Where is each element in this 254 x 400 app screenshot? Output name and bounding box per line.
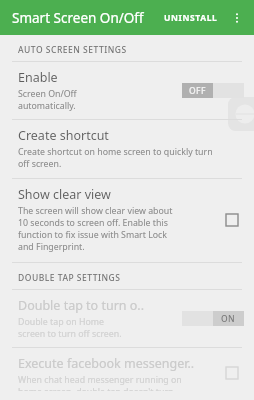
- staticText: DOUBLE TAP SETTINGS: [18, 272, 121, 284]
- staticText: OFF: [189, 85, 206, 97]
- staticText: Enable: [18, 69, 58, 86]
- staticText: Create shortcut on home screen to quickl…: [18, 146, 213, 170]
- button[interactable]: Toggle on: [182, 311, 244, 326]
- staticText: Create shortcut: [18, 127, 109, 144]
- staticText: Show clear view: [18, 186, 111, 203]
- button[interactable]: Checkbox: [220, 208, 244, 232]
- staticText: AUTO SCREEN SETTINGS: [18, 44, 127, 56]
- staticText: Double tap on Home screen to turn off sc…: [18, 316, 122, 340]
- staticText: Execute facebook messenger..: [18, 355, 195, 372]
- staticText: ON: [221, 313, 236, 325]
- button[interactable]: Execute facebook messenger..: [0, 348, 254, 400]
- button[interactable]: Create shortcut: [0, 120, 254, 178]
- staticText: Double tap to turn o..: [18, 297, 145, 314]
- button[interactable]: Double tap to turn o..: [0, 290, 254, 347]
- button[interactable]: Show clear view: [0, 179, 254, 262]
- button[interactable]: UNINSTALL: [158, 4, 224, 32]
- button[interactable]: Enable: [0, 62, 254, 119]
- staticText: The screen will show clear view about 10…: [18, 205, 173, 253]
- staticText: UNINSTALL: [164, 12, 218, 24]
- button[interactable]: Toggle off: [182, 83, 244, 98]
- staticText: Screen On/Off automatically.: [18, 88, 77, 112]
- staticText: Smart Screen On/Off: [12, 9, 144, 27]
- button[interactable]: Checkbox: [220, 361, 244, 385]
- staticText: When chat head messenger running on home…: [18, 374, 182, 391]
- button[interactable]: More options: [224, 5, 250, 31]
